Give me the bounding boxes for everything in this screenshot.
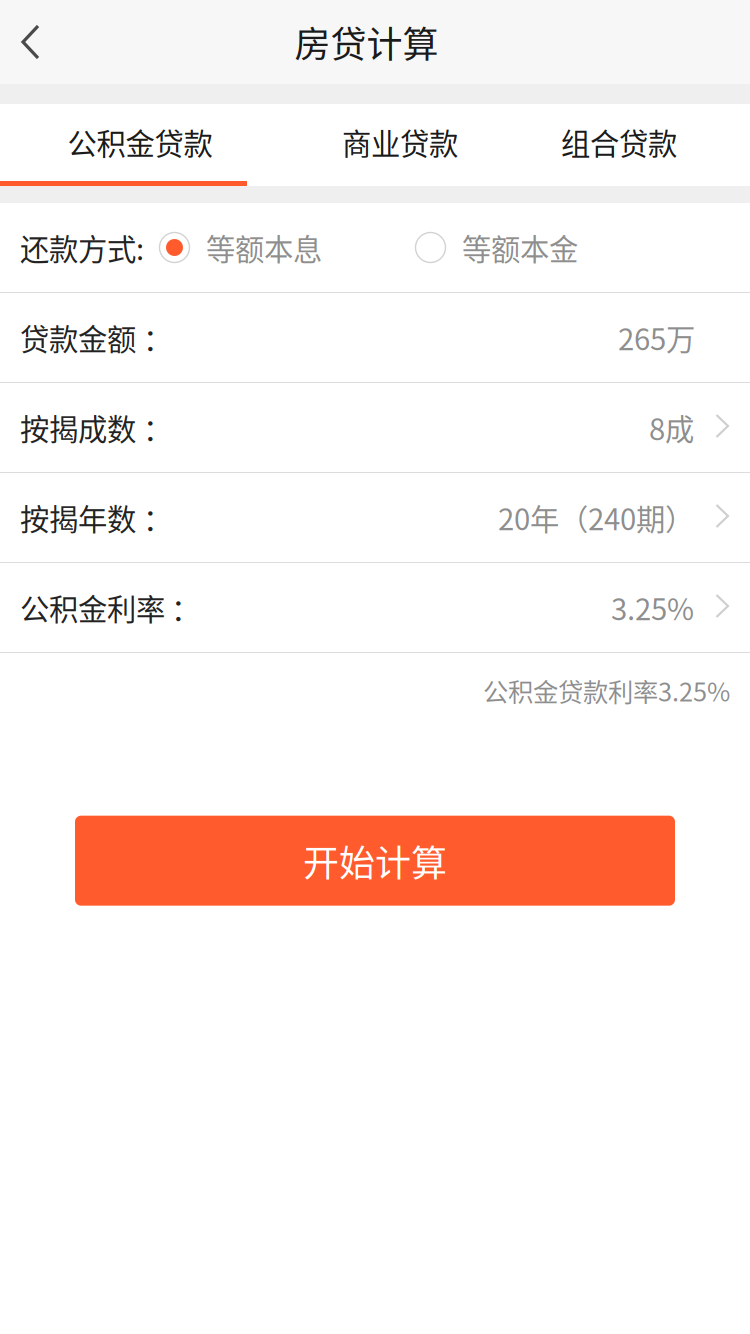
staticText: 265万 <box>618 316 695 359</box>
button[interactable]: 公积金贷款 <box>0 108 280 186</box>
staticText: 房贷计算 <box>294 16 438 68</box>
staticText: 组合贷款 <box>561 121 677 163</box>
button[interactable]: 等额本息 <box>159 226 322 269</box>
staticText: 等额本金 <box>462 226 578 269</box>
staticText: 3.25% <box>611 586 694 629</box>
staticText: 按揭成数 ： <box>20 406 172 449</box>
button[interactable]: 按揭年数 ： <box>0 473 750 563</box>
staticText: 按揭年数 ： <box>20 496 172 539</box>
staticText: 公积金贷款利率3.25% <box>483 672 730 709</box>
staticText: 公积金利率 ： <box>20 586 200 629</box>
button[interactable]: 组合贷款 <box>520 108 718 186</box>
button[interactable]: 等额本金 <box>415 226 578 269</box>
staticText: 开始计算 <box>303 835 447 887</box>
staticText: 贷款金额 ： <box>20 316 172 359</box>
button[interactable]: 贷款金额 ： <box>0 293 750 383</box>
button[interactable]: 开始计算 <box>75 816 675 906</box>
button[interactable]: 商业贷款 <box>280 108 520 186</box>
staticText: 20年（240期） <box>498 496 694 539</box>
staticText: 还款方式: <box>20 226 144 269</box>
button[interactable]: 公积金利率 ： <box>0 563 750 653</box>
staticText: 8成 <box>649 406 694 449</box>
staticText: 等额本息 <box>206 226 322 269</box>
button[interactable]: 按揭成数 ： <box>0 383 750 473</box>
staticText: 公积金贷款 <box>67 121 212 163</box>
button[interactable]: 返回 <box>0 0 90 84</box>
staticText: 商业贷款 <box>342 121 458 163</box>
